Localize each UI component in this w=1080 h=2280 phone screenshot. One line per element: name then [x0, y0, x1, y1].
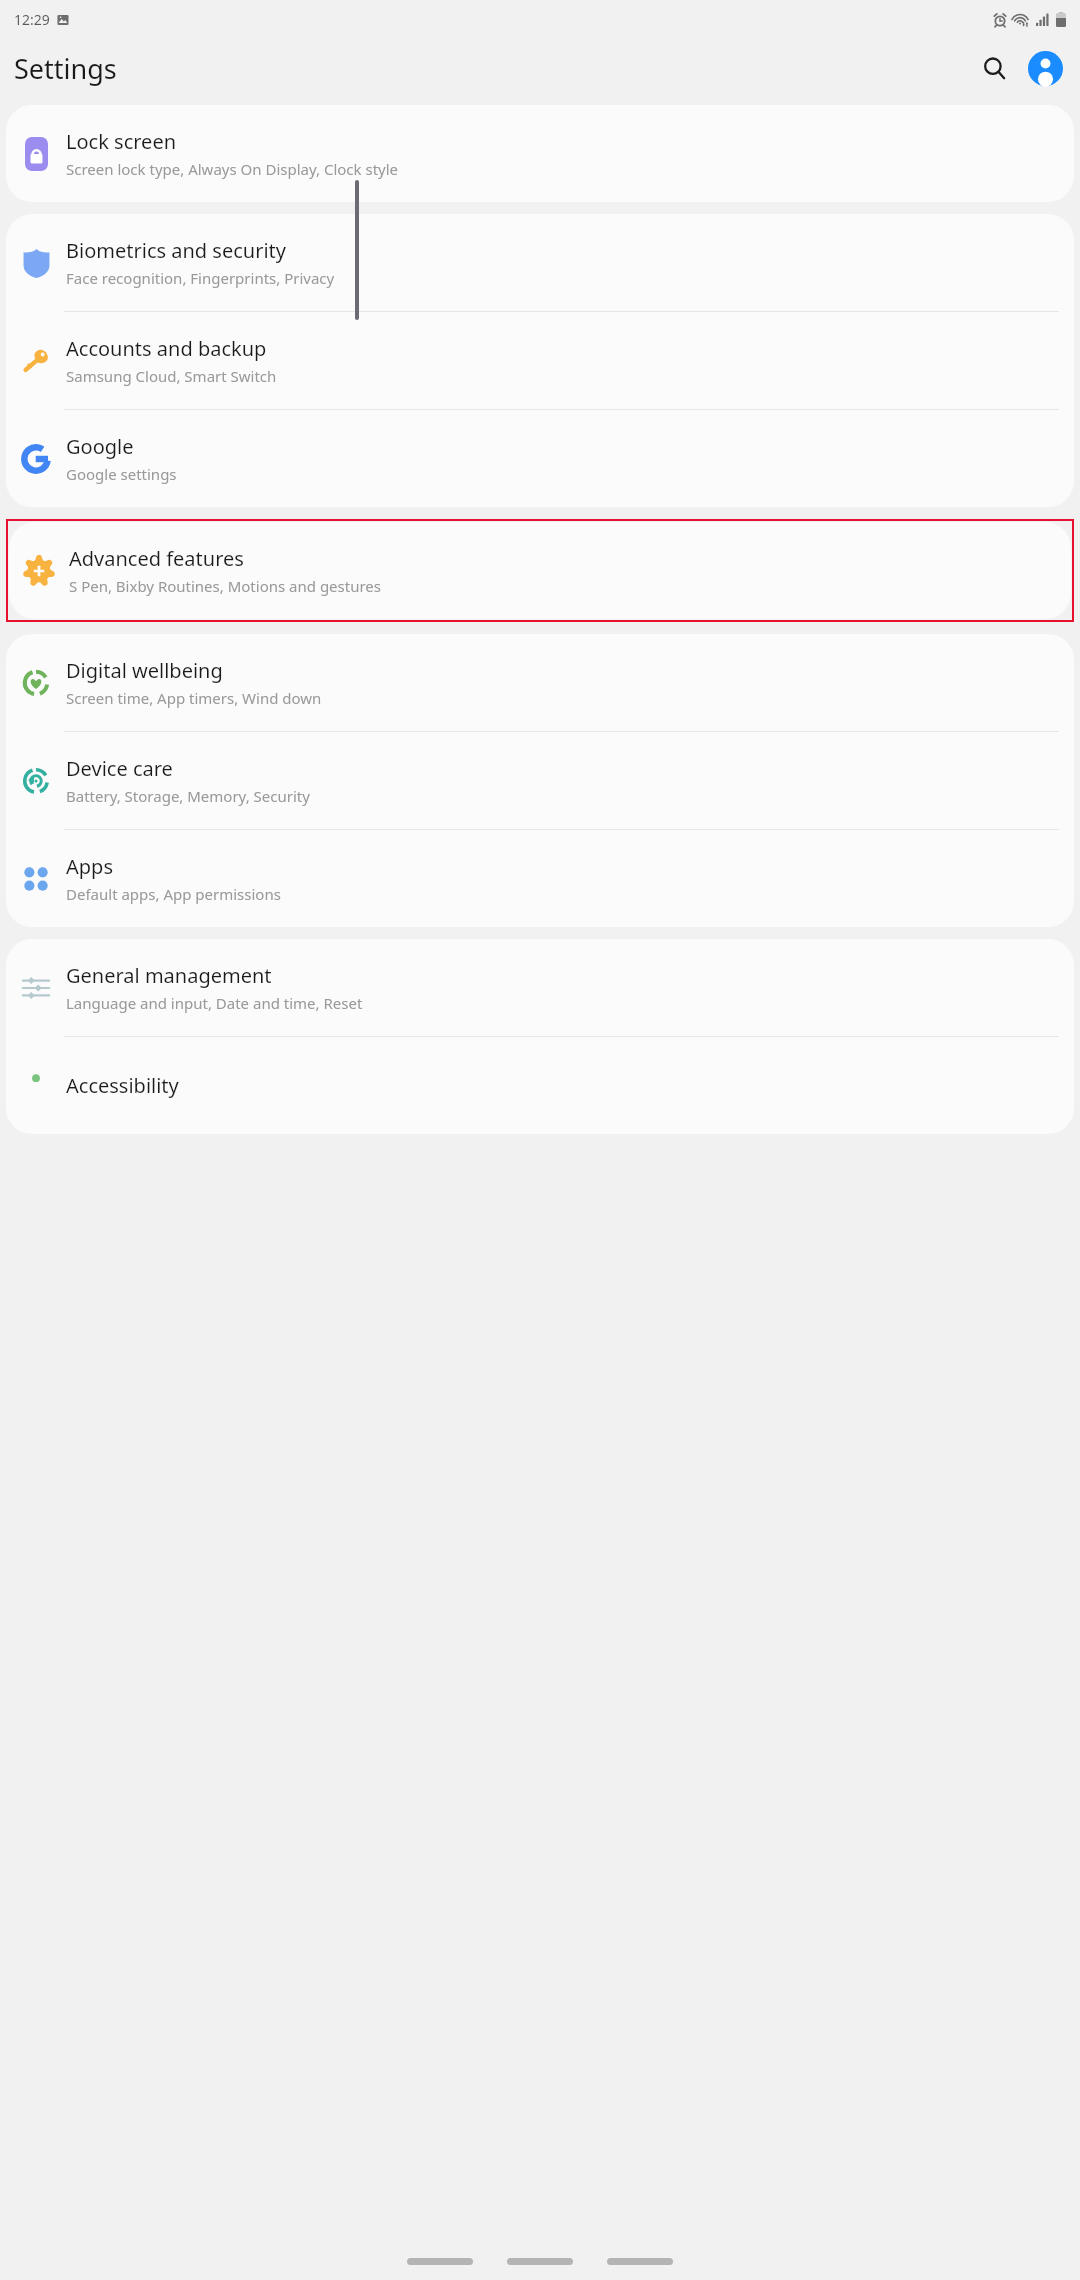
- button[interactable]: Home: [507, 2258, 573, 2265]
- staticText: Accounts and backup: [66, 335, 267, 362]
- button[interactable]: General management: [6, 939, 1074, 1036]
- staticText: Apps: [66, 853, 113, 880]
- staticText: Face recognition, Fingerprints, Privacy: [66, 268, 335, 288]
- staticText: Samsung Cloud, Smart Switch: [66, 366, 277, 386]
- staticText: Digital wellbeing: [66, 657, 223, 684]
- button[interactable]: Advanced features: [9, 522, 1071, 619]
- staticText: Google settings: [66, 464, 177, 484]
- button[interactable]: Digital wellbeing: [6, 634, 1074, 731]
- staticText: Biometrics and security: [66, 237, 286, 264]
- button[interactable]: Account: [1023, 46, 1067, 90]
- button[interactable]: Apps: [6, 830, 1074, 927]
- button[interactable]: Accessibility: [6, 1037, 1074, 1134]
- staticText: Device care: [66, 755, 173, 782]
- staticText: Advanced features: [69, 545, 244, 572]
- button[interactable]: Recents: [407, 2258, 473, 2265]
- button[interactable]: Back: [607, 2258, 673, 2265]
- staticText: Default apps, App permissions: [66, 884, 281, 904]
- button[interactable]: Google: [6, 410, 1074, 507]
- staticText: Settings: [14, 50, 117, 87]
- staticText: Battery, Storage, Memory, Security: [66, 786, 310, 806]
- button[interactable]: Accounts and backup: [6, 312, 1074, 409]
- staticText: Language and input, Date and time, Reset: [66, 993, 363, 1013]
- staticText: Lock screen: [66, 128, 177, 155]
- button[interactable]: Lock screen: [6, 105, 1074, 202]
- staticText: Screen lock type, Always On Display, Clo…: [66, 159, 399, 179]
- staticText: Accessibility: [66, 1072, 179, 1099]
- staticText: 12:29: [14, 10, 50, 29]
- button[interactable]: Biometrics and security: [6, 214, 1074, 311]
- staticText: Screen time, App timers, Wind down: [66, 688, 322, 708]
- staticText: S Pen, Bixby Routines, Motions and gestu…: [69, 576, 381, 596]
- staticText: Google: [66, 433, 134, 460]
- button[interactable]: Search: [972, 46, 1016, 90]
- staticText: General management: [66, 962, 272, 989]
- button[interactable]: Device care: [6, 732, 1074, 829]
